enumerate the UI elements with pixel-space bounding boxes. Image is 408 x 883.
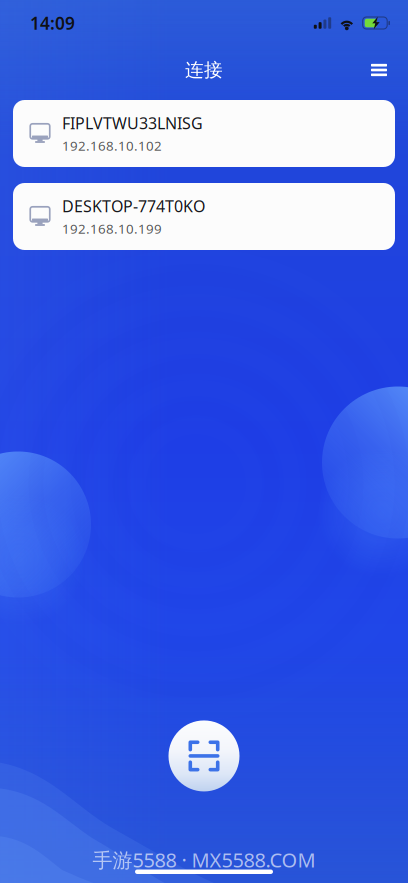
staticText: 手游5588 · MX5588.COM	[92, 846, 315, 873]
staticText: 192.168.10.102	[62, 137, 162, 154]
staticText: FIPLVTWU33LNISG	[62, 112, 203, 134]
button[interactable]: Scan QR code	[168, 720, 239, 791]
staticText: DESKTOP-774T0KO	[62, 195, 205, 217]
staticText: 14:09	[30, 11, 75, 34]
button[interactable]: Menu	[357, 48, 401, 92]
staticText: 连接	[185, 58, 223, 81]
button[interactable]: FIPLVTWU33LNISG	[13, 100, 395, 167]
button[interactable]: DESKTOP-774T0KO	[13, 183, 395, 250]
staticText: 192.168.10.199	[62, 220, 162, 237]
